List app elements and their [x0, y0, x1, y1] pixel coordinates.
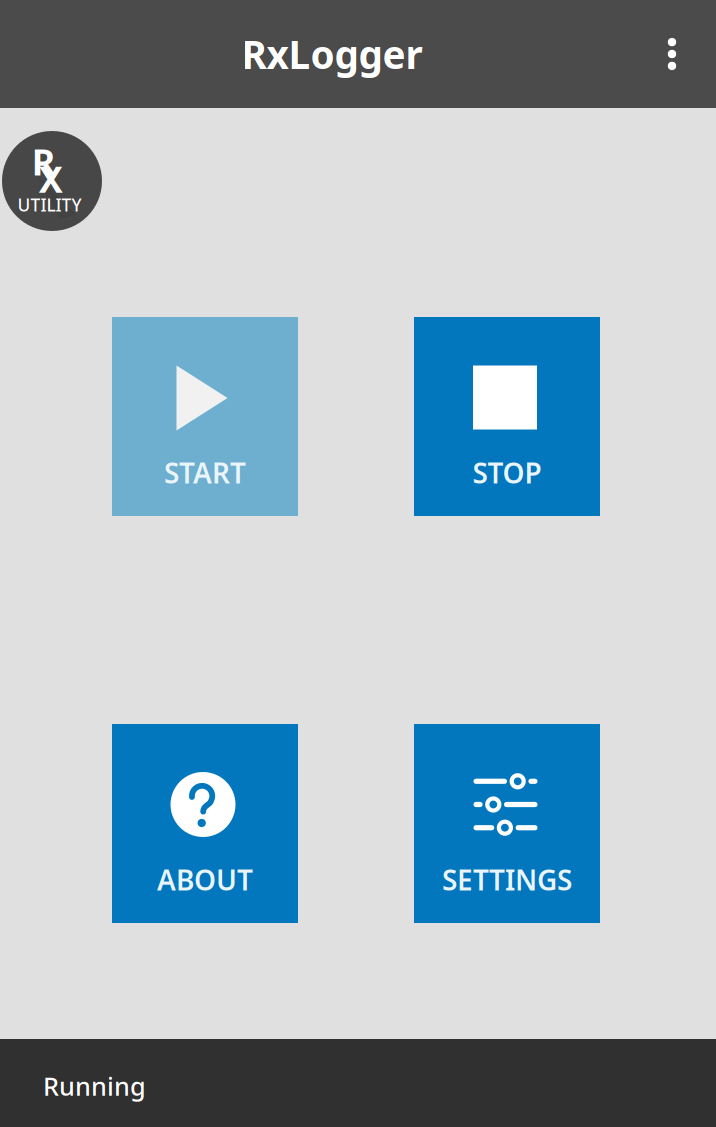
- staticText: SETTINGS: [442, 861, 572, 898]
- staticText: UTILITY: [17, 193, 81, 216]
- button[interactable]: STOP: [414, 317, 600, 516]
- button[interactable]: START: [112, 317, 298, 516]
- button[interactable]: ABOUT: [112, 724, 298, 923]
- staticText: START: [164, 454, 246, 491]
- staticText: STOP: [472, 454, 541, 491]
- staticText: Running: [43, 1069, 146, 1103]
- staticText: ABOUT: [157, 861, 253, 898]
- button[interactable]: SETTINGS: [414, 724, 600, 923]
- staticText: R: [32, 138, 56, 185]
- button[interactable]: More options: [644, 0, 700, 108]
- staticText: X: [39, 155, 63, 203]
- staticText: RxLogger: [241, 28, 422, 80]
